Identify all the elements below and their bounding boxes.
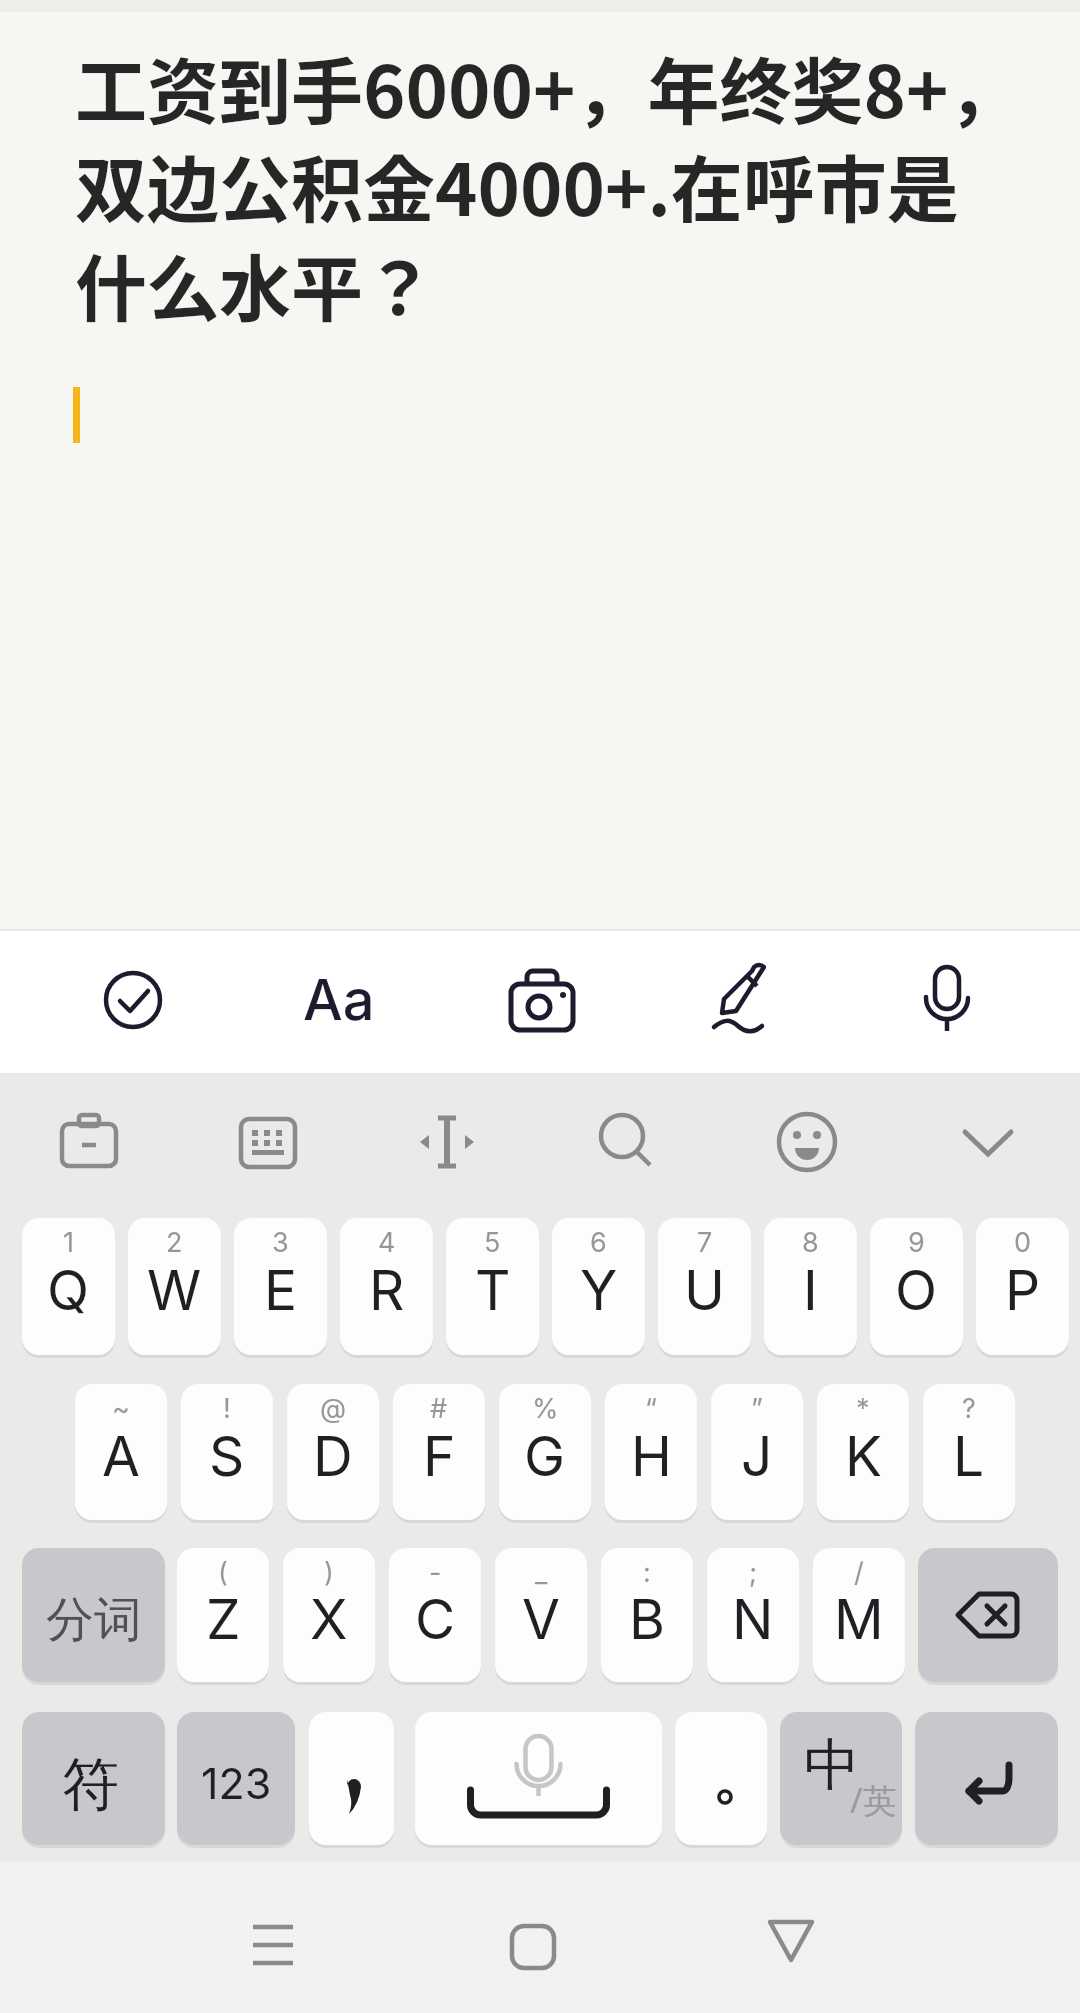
staticText: V — [522, 1586, 560, 1653]
staticText: 0 — [1014, 1226, 1032, 1259]
staticText: Y — [580, 1257, 618, 1324]
staticText: 7 — [697, 1226, 713, 1259]
staticText: C — [415, 1586, 456, 1653]
staticText: 中 — [804, 1730, 860, 1801]
staticText: 5 — [484, 1226, 501, 1259]
staticText: 9 — [908, 1226, 925, 1259]
staticText: 2 — [166, 1226, 183, 1259]
staticText: ( — [218, 1556, 228, 1589]
staticText: P — [1005, 1257, 1041, 1324]
staticText: % — [532, 1392, 559, 1425]
staticText: ? — [962, 1392, 976, 1425]
staticText: H — [631, 1423, 672, 1490]
staticText: : — [643, 1556, 651, 1589]
staticText: 3 — [272, 1226, 289, 1259]
staticText: Aa — [303, 966, 375, 1034]
staticText: M — [834, 1586, 884, 1653]
staticText: # — [430, 1392, 448, 1425]
staticText: 工资到手6000+，年终奖8+， 双边公积金4000+.在呼市是 什么水平？ — [75, 34, 1021, 336]
staticText: ! — [223, 1392, 231, 1425]
staticText: 123 — [201, 1757, 272, 1809]
staticText: U — [684, 1257, 725, 1324]
staticText: * — [856, 1392, 870, 1425]
staticText: _ — [535, 1556, 548, 1589]
staticText: D — [313, 1423, 353, 1490]
staticText: G — [524, 1423, 566, 1490]
staticText: @ — [320, 1392, 347, 1425]
staticText: I — [803, 1257, 818, 1324]
staticText: X — [310, 1586, 348, 1653]
staticText: ) — [324, 1556, 334, 1589]
staticText: Q — [47, 1257, 90, 1324]
staticText: / — [854, 1556, 864, 1589]
staticText: O — [895, 1257, 938, 1324]
staticText: 符 — [62, 1749, 119, 1821]
staticText: N — [732, 1586, 774, 1653]
staticText: A — [102, 1423, 140, 1490]
staticText: J — [741, 1423, 773, 1490]
staticText: 4 — [378, 1226, 396, 1259]
staticText: ~ — [112, 1392, 130, 1425]
staticText: Z — [206, 1586, 241, 1653]
staticText: /英 — [850, 1777, 897, 1823]
staticText: T — [475, 1257, 511, 1324]
staticText: F — [423, 1423, 456, 1490]
staticText: 1 — [63, 1226, 74, 1259]
staticText: R — [369, 1257, 405, 1324]
staticText: K — [845, 1423, 882, 1490]
staticText: B — [629, 1586, 665, 1653]
staticText: “ — [645, 1392, 657, 1425]
staticText: ” — [751, 1392, 763, 1425]
staticText: - — [429, 1556, 442, 1589]
staticText: 6 — [590, 1226, 607, 1259]
staticText: W — [147, 1257, 202, 1324]
staticText: 分词 — [46, 1590, 142, 1650]
staticText: ; — [749, 1556, 758, 1589]
staticText: S — [209, 1423, 245, 1490]
staticText: E — [264, 1257, 298, 1324]
staticText: L — [953, 1423, 985, 1490]
staticText: 8 — [802, 1226, 819, 1259]
